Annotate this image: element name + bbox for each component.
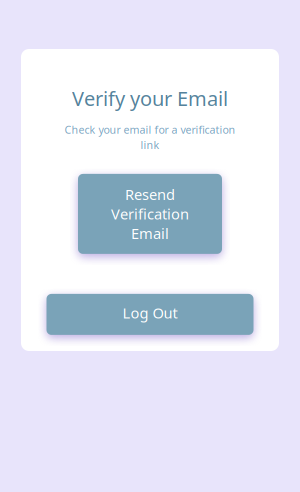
button[interactable]: Log Out (46, 294, 253, 335)
staticText: Check your email for a verification (64, 123, 235, 137)
staticText: Resend (125, 185, 175, 204)
staticText: Verify your Email (72, 85, 228, 112)
staticText: link (140, 138, 159, 152)
staticText: Log Out (122, 303, 177, 323)
staticText: Email (131, 224, 169, 243)
staticText: Verification (111, 204, 189, 224)
button[interactable]: Resend Verification Email (78, 174, 222, 254)
